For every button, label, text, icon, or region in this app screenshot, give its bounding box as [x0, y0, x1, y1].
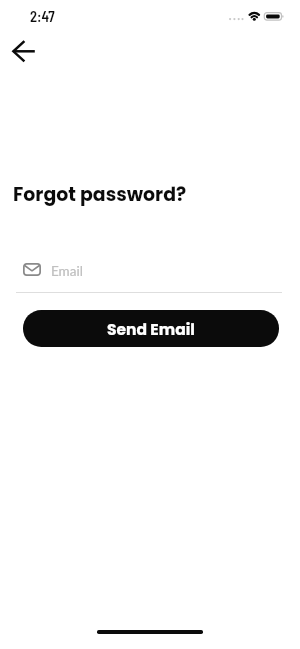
staticText: Send Email	[107, 319, 195, 341]
staticText: 2:47	[30, 7, 55, 24]
staticText: Email	[51, 263, 83, 279]
button[interactable]: Send Email	[23, 310, 279, 347]
button[interactable]: Email	[16, 258, 283, 294]
staticText: Forgot password?	[13, 181, 187, 207]
button[interactable]	[7, 37, 41, 67]
